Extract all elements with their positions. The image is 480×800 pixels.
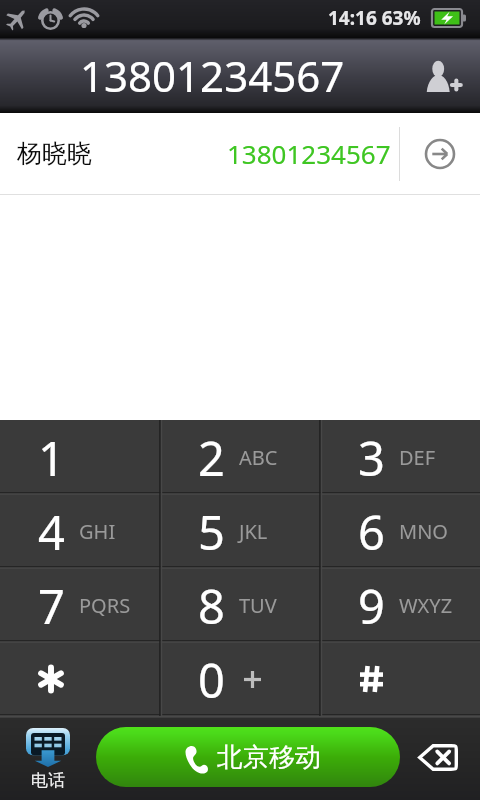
staticText: 电话 — [31, 770, 65, 791]
staticText: 4 — [38, 500, 65, 564]
staticText: 0 — [198, 648, 225, 712]
staticText: 7 — [38, 574, 65, 638]
staticText: 13801234567 — [80, 47, 345, 104]
button[interactable]: Add contact — [408, 38, 480, 113]
staticText: 2 — [198, 426, 225, 490]
staticText: 13801234567 — [227, 136, 391, 171]
staticText: DEF — [399, 444, 436, 471]
staticText: 6 — [358, 500, 385, 564]
button[interactable]: Backspace — [398, 727, 478, 787]
button[interactable] — [0, 642, 160, 716]
staticText: 3 — [358, 426, 385, 490]
button[interactable]: 3 — [320, 420, 480, 494]
staticText: 5 — [198, 500, 225, 564]
staticText: 杨晓晓 — [17, 138, 92, 169]
button[interactable]: 5 — [160, 494, 320, 568]
button[interactable]: 7 — [0, 568, 160, 642]
staticText: PQRS — [79, 592, 131, 619]
staticText: WXYZ — [399, 592, 453, 619]
staticText: 14:16 63% — [328, 5, 421, 31]
button[interactable]: 2 — [160, 420, 320, 494]
staticText: 8 — [198, 574, 225, 638]
button[interactable]: 8 — [160, 568, 320, 642]
staticText: JKL — [239, 518, 268, 545]
button[interactable]: 0 — [160, 642, 320, 716]
staticText: 9 — [358, 574, 385, 638]
staticText: 1 — [38, 426, 65, 490]
button[interactable]: 9 — [320, 568, 480, 642]
button[interactable]: 北京移动 — [96, 727, 400, 787]
staticText: 北京移动 — [217, 741, 321, 774]
button[interactable]: 6 — [320, 494, 480, 568]
button[interactable]: 1 — [0, 420, 160, 494]
button[interactable] — [320, 642, 480, 716]
staticText: ABC — [239, 444, 278, 471]
button[interactable]: 电话 — [0, 720, 96, 798]
staticText: TUV — [239, 592, 277, 619]
staticText: GHI — [79, 518, 116, 545]
button[interactable]: 4 — [0, 494, 160, 568]
staticText: MNO — [399, 518, 448, 545]
button[interactable]: 杨晓晓 — [0, 113, 480, 194]
button[interactable]: Details — [400, 113, 480, 194]
